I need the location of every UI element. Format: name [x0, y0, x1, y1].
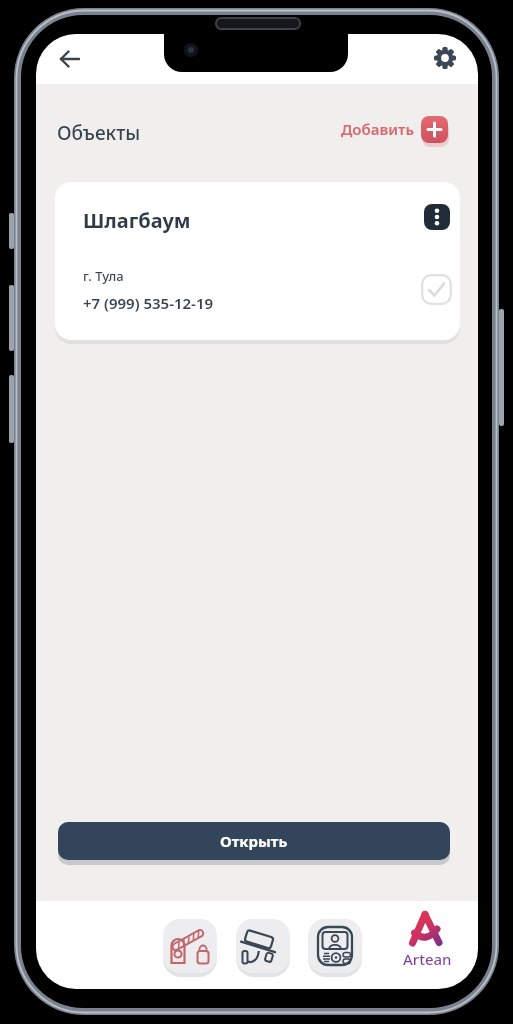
staticText: +7 (999) 535-12-19 — [83, 293, 214, 313]
button[interactable]: Добавить — [306, 116, 414, 142]
staticText: Добавить — [341, 119, 414, 139]
button[interactable] — [308, 919, 362, 973]
staticText: Объекты — [57, 120, 141, 146]
staticText: Artean — [403, 949, 452, 969]
button[interactable]: Шлагбаум — [55, 182, 460, 340]
button[interactable]: Artean — [398, 908, 454, 968]
button[interactable]: Открыть — [58, 822, 450, 860]
staticText: Открыть — [220, 831, 288, 851]
button[interactable] — [421, 274, 452, 305]
button[interactable] — [434, 47, 456, 69]
button[interactable] — [236, 919, 290, 973]
button[interactable] — [163, 919, 217, 973]
button[interactable] — [59, 49, 81, 69]
staticText: Шлагбаум — [83, 207, 191, 234]
staticText: г. Тула — [83, 267, 124, 285]
button[interactable] — [424, 204, 450, 230]
button[interactable] — [421, 116, 448, 143]
